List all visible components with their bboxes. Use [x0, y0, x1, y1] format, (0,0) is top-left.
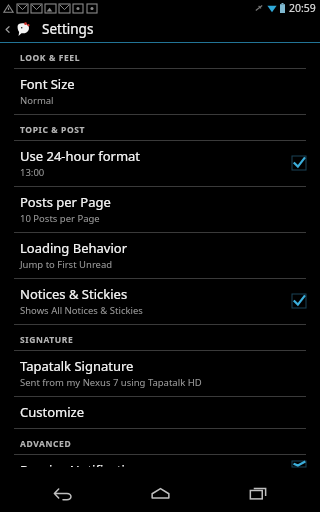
button[interactable]: Recent apps	[223, 474, 293, 512]
staticText: Posts per Page	[20, 193, 111, 211]
staticText: Normal	[20, 94, 54, 107]
staticText: LOOK & FEEL	[20, 52, 81, 64]
button[interactable]: Tapatalk Signature	[0, 351, 320, 396]
button[interactable]: Use 24-hour format	[0, 141, 320, 186]
button[interactable]: Use 24-hour format toggle	[292, 156, 306, 170]
staticText: Receive Notification	[20, 461, 141, 467]
button[interactable]: Font Size	[0, 69, 320, 114]
button[interactable]: Loading Behavior	[0, 233, 320, 278]
staticText: Shows All Notices & Stickies	[20, 304, 143, 317]
staticText: Notices & Stickies	[20, 285, 128, 303]
button[interactable]: Back	[28, 474, 98, 512]
staticText: Jump to First Unread	[20, 258, 113, 271]
button[interactable]: Receive Notification toggle	[292, 461, 306, 467]
staticText: TOPIC & POST	[20, 124, 86, 136]
staticText: Tapatalk Signature	[20, 357, 134, 375]
staticText: 10 Posts per Page	[20, 212, 100, 225]
staticText: 20:59	[289, 1, 316, 15]
staticText: Settings	[42, 20, 94, 38]
button[interactable]: Posts per Page	[0, 187, 320, 232]
staticText: ADVANCED	[20, 438, 72, 450]
staticText: SIGNATURE	[20, 334, 74, 346]
staticText: Loading Behavior	[20, 239, 128, 257]
staticText: Font Size	[20, 75, 75, 93]
button[interactable]: Home	[125, 474, 195, 512]
button[interactable]: Receive Notification	[0, 455, 320, 474]
button[interactable]: Navigate up	[0, 16, 14, 42]
staticText: Use 24-hour format	[20, 147, 141, 165]
staticText: Customize	[20, 403, 84, 421]
staticText: 13:00	[20, 166, 45, 179]
staticText: Sent from my Nexus 7 using Tapatalk HD	[20, 376, 202, 389]
button[interactable]: Notices & Stickies toggle	[292, 294, 306, 308]
button[interactable]: Notices & Stickies	[0, 279, 320, 324]
button[interactable]: Customize	[0, 397, 320, 428]
